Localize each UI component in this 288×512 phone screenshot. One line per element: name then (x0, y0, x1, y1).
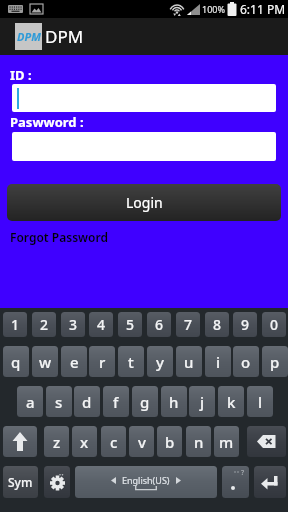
button[interactable]: z (44, 426, 69, 457)
button[interactable]: y (147, 346, 173, 377)
staticText: 1 (11, 315, 20, 334)
staticText: 2 (40, 315, 49, 334)
staticText: b (165, 432, 175, 452)
button[interactable]: a (17, 386, 43, 417)
staticText: 7 (184, 315, 193, 334)
staticText: Login (126, 193, 163, 212)
button[interactable]: o (233, 346, 259, 377)
staticText: g (140, 392, 150, 412)
button[interactable]: i (205, 346, 231, 377)
button[interactable]: m (214, 426, 239, 457)
staticText: 3 (69, 315, 78, 334)
button[interactable] (3, 426, 37, 457)
staticText: u (184, 352, 194, 372)
staticText: 6:11 PM (240, 1, 286, 17)
button[interactable] (12, 84, 276, 112)
staticText: i (216, 352, 221, 372)
staticText: 5 (126, 315, 135, 334)
button[interactable]: p (262, 346, 288, 377)
staticText: j (200, 392, 205, 412)
staticText: d (82, 392, 92, 412)
button[interactable]: 6 (147, 312, 171, 337)
staticText: 4 (97, 315, 106, 334)
staticText: 6 (155, 315, 164, 334)
button[interactable]: 7 (176, 312, 200, 337)
button[interactable]: v (129, 426, 154, 457)
staticText: s (55, 392, 63, 412)
staticText: z (53, 432, 61, 452)
button[interactable]: c (101, 426, 126, 457)
staticText: l (258, 392, 263, 412)
staticText: Paswword : (10, 113, 84, 131)
button[interactable] (254, 466, 286, 498)
staticText: w (39, 352, 52, 372)
button[interactable]: s (46, 386, 72, 417)
button[interactable]: English(US) (75, 466, 217, 498)
staticText: e (70, 352, 79, 372)
button[interactable]: q (3, 346, 29, 377)
button[interactable]: u (176, 346, 202, 377)
staticText: 8 (213, 315, 222, 334)
button[interactable]: h (161, 386, 187, 417)
button[interactable]: 0 (262, 312, 286, 337)
staticText: q (11, 352, 21, 372)
staticText: 0 (270, 315, 279, 334)
staticText: 100% (202, 3, 225, 15)
button[interactable]: 2 (32, 312, 56, 337)
button[interactable]: Login (7, 184, 281, 221)
staticText: o (241, 352, 251, 372)
staticText: Forgot Password (10, 229, 108, 245)
button[interactable] (44, 466, 70, 498)
staticText: m (219, 432, 234, 452)
button[interactable]: l (247, 386, 273, 417)
staticText: f (113, 392, 119, 412)
staticText: 9 (241, 315, 250, 334)
button[interactable] (247, 426, 286, 457)
button[interactable]: w (32, 346, 58, 377)
button[interactable] (12, 132, 276, 161)
button[interactable]: Forgot Password (10, 229, 108, 245)
staticText: ? (241, 468, 245, 478)
staticText: r (99, 352, 106, 372)
staticText: n (194, 432, 204, 452)
staticText: p (270, 352, 280, 372)
button[interactable]: 5 (118, 312, 142, 337)
staticText: DPM (17, 29, 41, 44)
button[interactable]: e (61, 346, 87, 377)
button[interactable]: j (189, 386, 215, 417)
button[interactable]: Sym (3, 466, 38, 498)
button[interactable]: g (132, 386, 158, 417)
button[interactable]: 8 (205, 312, 229, 337)
staticText: y (156, 352, 164, 372)
button[interactable]: d (74, 386, 100, 417)
button[interactable]: k (218, 386, 244, 417)
button[interactable]: r (89, 346, 115, 377)
button[interactable]: 9 (233, 312, 257, 337)
staticText: ID : (10, 66, 32, 84)
staticText: k (227, 392, 236, 412)
button[interactable]: 4 (89, 312, 113, 337)
button[interactable]: b (157, 426, 182, 457)
button[interactable]: n (186, 426, 211, 457)
button[interactable]: ? (222, 466, 249, 498)
staticText: v (138, 432, 146, 452)
button[interactable]: t (118, 346, 144, 377)
button[interactable]: x (72, 426, 97, 457)
staticText: a (26, 392, 35, 412)
staticText: DPM (45, 25, 84, 48)
staticText: t (128, 352, 134, 372)
staticText: Sym (8, 474, 33, 490)
button[interactable]: 3 (61, 312, 85, 337)
staticText: c (110, 432, 118, 452)
staticText: x (80, 432, 89, 452)
button[interactable]: f (103, 386, 129, 417)
staticText: English(US) (122, 474, 170, 486)
staticText: h (169, 392, 179, 412)
button[interactable]: 1 (3, 312, 27, 337)
